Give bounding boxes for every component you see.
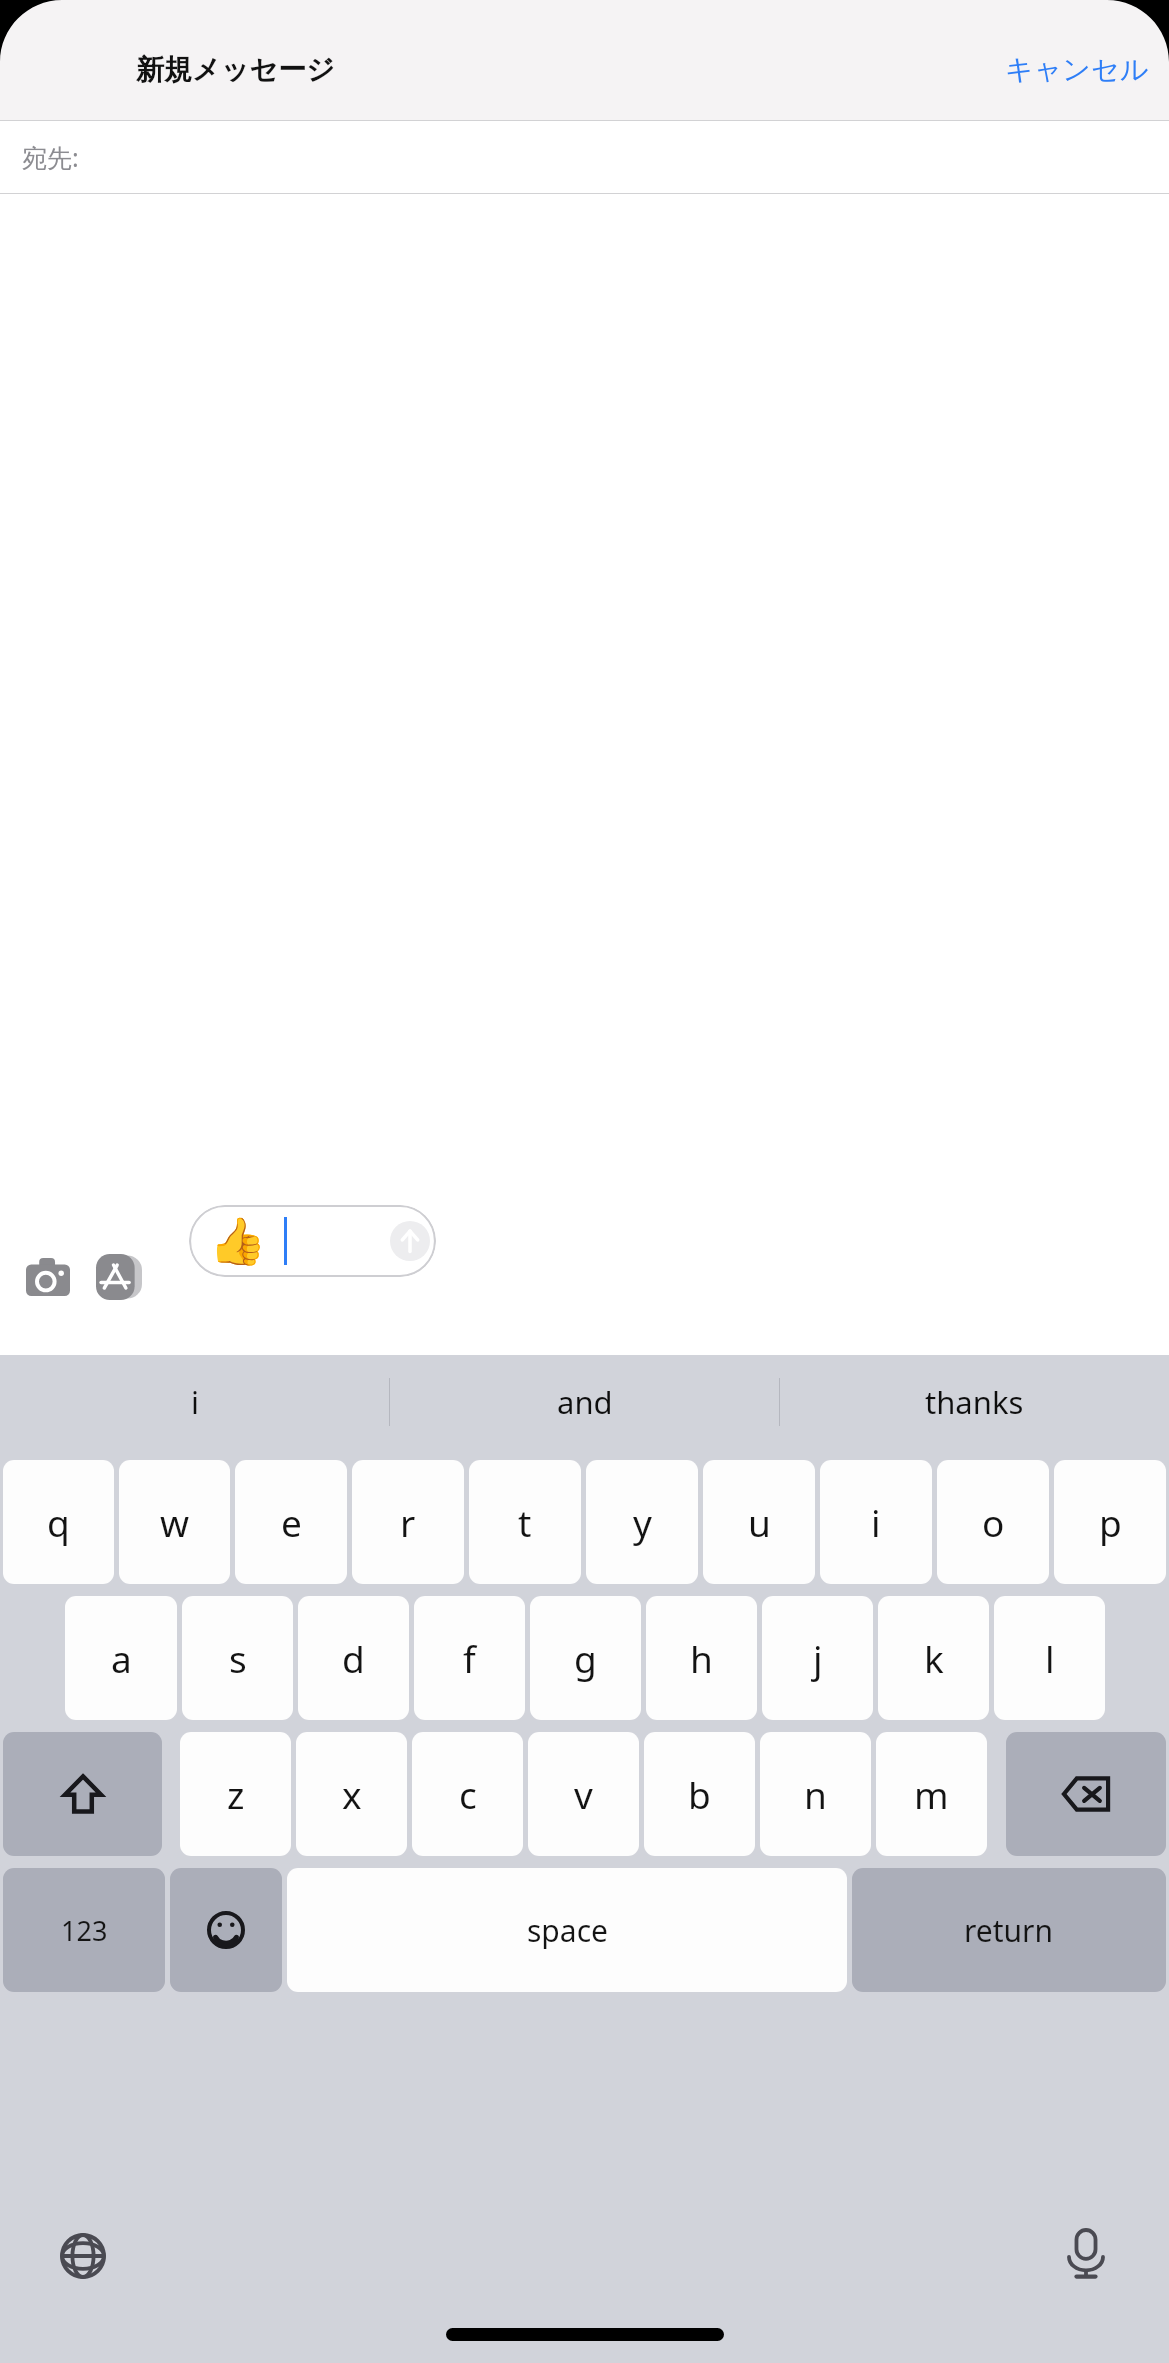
button[interactable]: Shift <box>3 1732 162 1856</box>
button[interactable]: h <box>646 1596 757 1720</box>
staticText: z <box>227 1769 245 1819</box>
staticText: t <box>518 1497 532 1547</box>
staticText: k <box>924 1633 944 1683</box>
button[interactable]: o <box>937 1460 1049 1584</box>
staticText: y <box>633 1497 652 1547</box>
button[interactable]: a <box>65 1596 177 1720</box>
staticText: n <box>804 1769 827 1819</box>
button[interactable]: Dictate <box>1055 2223 1117 2285</box>
button[interactable]: y <box>586 1460 698 1584</box>
button[interactable]: i <box>820 1460 932 1584</box>
button[interactable]: q <box>3 1460 114 1584</box>
button[interactable]: p <box>1054 1460 1166 1584</box>
staticText: g <box>574 1633 597 1683</box>
staticText: c <box>459 1769 477 1819</box>
staticText: l <box>1045 1633 1055 1683</box>
button[interactable]: thanks <box>780 1355 1169 1448</box>
staticText: a <box>111 1633 132 1683</box>
staticText: 123 <box>61 1912 108 1949</box>
button[interactable]: f <box>414 1596 525 1720</box>
staticText: s <box>229 1633 247 1683</box>
button[interactable]: u <box>703 1460 815 1584</box>
button[interactable]: w <box>119 1460 230 1584</box>
button[interactable]: b <box>644 1732 755 1856</box>
staticText: r <box>400 1497 416 1547</box>
staticText: m <box>914 1769 949 1819</box>
button[interactable]: c <box>412 1732 523 1856</box>
staticText: return <box>964 1910 1054 1951</box>
button[interactable]: d <box>298 1596 409 1720</box>
staticText: i <box>191 1381 199 1423</box>
staticText: b <box>688 1769 711 1819</box>
staticText: キャンセル <box>1005 52 1149 87</box>
staticText: o <box>982 1497 1005 1547</box>
staticText: 宛先: <box>22 140 79 174</box>
button[interactable]: v <box>528 1732 639 1856</box>
staticText: f <box>463 1633 476 1683</box>
staticText: q <box>47 1497 70 1547</box>
button[interactable]: and <box>390 1355 779 1448</box>
staticText: and <box>557 1381 613 1423</box>
button[interactable]: t <box>469 1460 581 1584</box>
button[interactable]: 宛先: <box>0 121 1169 193</box>
staticText: thanks <box>925 1381 1024 1423</box>
button[interactable]: Emoji <box>170 1868 282 1992</box>
button[interactable]: z <box>180 1732 291 1856</box>
staticText: v <box>574 1769 593 1819</box>
staticText: i <box>871 1497 881 1547</box>
button[interactable]: n <box>760 1732 871 1856</box>
button[interactable]: k <box>878 1596 989 1720</box>
button[interactable]: Change keyboard <box>52 2225 114 2287</box>
staticText: space <box>527 1910 608 1951</box>
staticText: j <box>813 1633 823 1683</box>
button[interactable]: Take photo <box>26 1258 70 1296</box>
staticText: e <box>281 1497 302 1547</box>
button[interactable]: m <box>876 1732 987 1856</box>
button[interactable]: r <box>352 1460 464 1584</box>
staticText: 新規メッセージ <box>136 52 335 87</box>
button[interactable]: l <box>994 1596 1105 1720</box>
button[interactable]: Send <box>390 1221 430 1261</box>
button[interactable]: space <box>287 1868 847 1992</box>
button[interactable]: キャンセル <box>997 44 1157 95</box>
button[interactable]: Delete <box>1006 1732 1166 1856</box>
button[interactable]: e <box>235 1460 347 1584</box>
staticText: h <box>690 1633 713 1683</box>
button[interactable]: return <box>852 1868 1166 1992</box>
staticText: 👍 <box>209 1214 267 1268</box>
button[interactable]: s <box>182 1596 293 1720</box>
button[interactable]: g <box>530 1596 641 1720</box>
button[interactable]: i <box>0 1355 389 1448</box>
staticText: p <box>1099 1497 1122 1547</box>
button[interactable]: j <box>762 1596 873 1720</box>
button[interactable]: x <box>296 1732 407 1856</box>
button[interactable]: 👍 <box>189 1205 436 1277</box>
button[interactable]: 123 <box>3 1868 165 1992</box>
button[interactable]: iMessage apps <box>96 1254 142 1300</box>
staticText: d <box>342 1633 365 1683</box>
staticText: w <box>160 1497 190 1547</box>
staticText: x <box>342 1769 362 1819</box>
staticText: u <box>748 1497 771 1547</box>
